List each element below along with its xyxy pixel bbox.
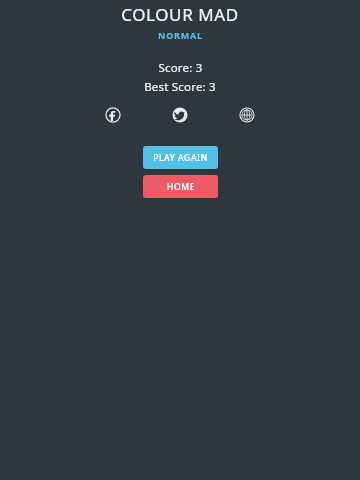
staticText: Score: 3 bbox=[158, 60, 203, 76]
button[interactable]: PLAY AGAIN bbox=[143, 146, 218, 169]
button[interactable]: Twitter bbox=[171, 106, 189, 124]
button[interactable]: Facebook bbox=[104, 106, 122, 124]
staticText: PLAY AGAIN bbox=[153, 152, 208, 164]
staticText: COLOUR MAD bbox=[121, 3, 239, 26]
staticText: Best Score: 3 bbox=[144, 79, 216, 95]
staticText: NORMAL bbox=[158, 29, 203, 41]
button[interactable]: HOME bbox=[143, 175, 218, 198]
button[interactable]: Website bbox=[238, 106, 256, 124]
staticText: HOME bbox=[167, 181, 195, 193]
